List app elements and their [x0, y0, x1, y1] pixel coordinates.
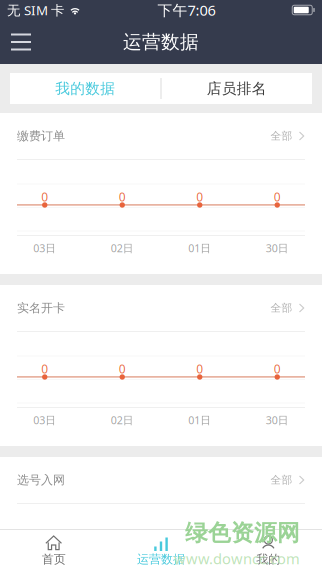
button[interactable]: 缴费订单: [0, 113, 322, 159]
staticText: 店员排名: [207, 79, 267, 97]
staticText: 运营数据: [137, 552, 185, 567]
staticText: www.downcc.com: [174, 549, 300, 568]
button[interactable]: 选号入网: [0, 457, 322, 503]
staticText: 我的: [256, 552, 280, 567]
staticText: 0: [274, 361, 281, 377]
button[interactable]: 实名开卡: [0, 285, 322, 331]
staticText: 01日: [188, 413, 211, 427]
staticText: 我的数据: [55, 79, 115, 97]
staticText: 全部: [270, 301, 292, 314]
staticText: 下午7:06: [157, 0, 215, 20]
staticText: 首页: [42, 552, 66, 567]
staticText: 选号入网: [17, 473, 65, 487]
staticText: 0: [119, 361, 126, 377]
staticText: 30日: [266, 241, 289, 255]
staticText: 0: [41, 361, 48, 377]
button[interactable]: 我的: [215, 530, 322, 572]
button[interactable]: 运营数据: [107, 530, 215, 572]
staticText: 0: [196, 361, 203, 377]
button[interactable]: 我的数据: [10, 73, 160, 104]
button[interactable]: Menu: [0, 20, 45, 63]
staticText: 0: [274, 189, 281, 205]
staticText: 全部: [270, 129, 292, 142]
staticText: 30日: [266, 413, 289, 427]
staticText: 绿色资源网: [185, 519, 300, 547]
staticText: 实名开卡: [17, 301, 65, 315]
staticText: 缴费订单: [17, 129, 65, 143]
button[interactable]: 店员排名: [161, 73, 312, 104]
staticText: 01日: [188, 241, 211, 255]
staticText: 全部: [270, 473, 292, 486]
staticText: 运营数据: [123, 30, 199, 53]
staticText: 03日: [33, 241, 56, 255]
staticText: 0: [196, 189, 203, 205]
staticText: 0: [41, 189, 48, 205]
staticText: 03日: [33, 413, 56, 427]
button[interactable]: 首页: [0, 530, 107, 572]
staticText: 02日: [111, 241, 134, 255]
staticText: 02日: [111, 413, 134, 427]
staticText: 无 SIM 卡: [7, 1, 64, 19]
staticText: 0: [119, 189, 126, 205]
